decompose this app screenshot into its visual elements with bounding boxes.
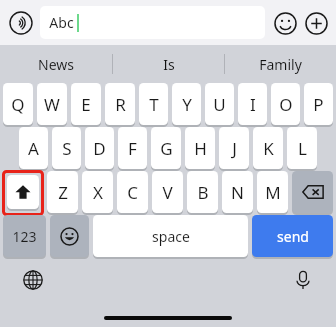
staticText: U [213,93,226,116]
button[interactable]: E [71,83,101,127]
button[interactable]: Y [172,83,201,127]
button[interactable]: Is [113,45,224,83]
button[interactable]: B [187,171,218,215]
staticText: send [277,227,309,246]
staticText: M [265,181,281,204]
staticText: W [44,93,60,116]
button[interactable]: Q [3,83,33,127]
button[interactable]: T [139,83,168,127]
button[interactable]: D [85,127,114,171]
button[interactable]: send [252,215,333,259]
button[interactable]: Shift [3,171,43,215]
button[interactable]: L [287,127,317,171]
staticText: Family [259,55,302,74]
button[interactable]: space [93,215,248,259]
staticText: I [250,93,256,116]
staticText: 123 [12,227,37,246]
button[interactable]: I [238,83,267,127]
button[interactable]: Emoji [271,9,299,37]
staticText: X [93,181,103,204]
staticText: space [152,227,190,246]
staticText: L [298,137,307,160]
button[interactable]: U [205,83,234,127]
button[interactable]: Family [225,45,336,83]
button[interactable]: V [152,171,183,215]
button[interactable]: P [304,83,333,127]
staticText: Y [182,93,192,116]
staticText: K [263,137,274,160]
button[interactable]: Backspace [292,171,333,215]
button[interactable]: J [219,127,249,171]
staticText: Q [11,93,25,116]
button[interactable]: Voice input [288,265,318,295]
staticText: V [162,181,173,204]
staticText: News [38,55,74,74]
staticText: T [149,93,159,116]
staticText: P [313,93,324,116]
staticText: H [194,137,207,160]
staticText: Is [163,55,175,74]
staticText: F [128,137,137,160]
button[interactable]: Z [47,171,78,215]
staticText: E [81,93,91,116]
button[interactable]: News [0,45,112,83]
staticText: A [28,137,39,160]
button[interactable]: Change keyboard language [18,265,48,295]
button[interactable]: M [257,171,288,215]
button[interactable]: N [222,171,253,215]
button[interactable]: Audio message [6,8,36,38]
staticText: S [62,137,72,160]
button[interactable]: Add attachment [302,9,330,37]
button[interactable]: R [105,83,135,127]
staticText: O [279,93,293,116]
button[interactable]: H [185,127,215,171]
staticText: Abc [49,13,74,32]
button[interactable]: A [19,127,48,171]
staticText: G [160,137,173,160]
button[interactable]: C [117,171,148,215]
button[interactable]: 123 [3,215,46,259]
button[interactable]: X [82,171,113,215]
staticText: J [232,137,237,160]
staticText: D [93,137,106,160]
button[interactable]: Emoji keyboard [50,215,89,259]
button[interactable]: W [37,83,67,127]
button[interactable]: Abc [40,6,265,39]
button[interactable]: S [52,127,81,171]
button[interactable]: G [151,127,181,171]
staticText: C [127,181,138,204]
button[interactable]: K [253,127,283,171]
staticText: B [197,181,209,204]
staticText: R [115,93,126,116]
button[interactable]: O [271,83,300,127]
button[interactable]: F [118,127,147,171]
staticText: N [231,181,244,204]
staticText: Z [58,181,68,204]
